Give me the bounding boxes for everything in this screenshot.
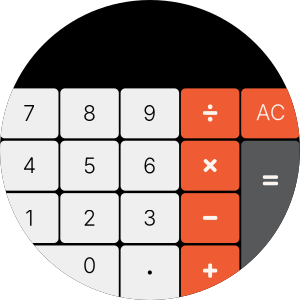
button[interactable]: Subtract [181, 193, 239, 243]
button[interactable]: Multiply [181, 141, 239, 191]
button[interactable]: 5 [60, 141, 119, 191]
staticText: 2 [83, 205, 96, 231]
staticText: 8 [83, 100, 96, 126]
button[interactable]: AC [241, 88, 300, 138]
staticText: 7 [23, 100, 35, 126]
staticText: 3 [143, 205, 156, 231]
button[interactable]: 4 [0, 141, 58, 191]
button[interactable]: Decimal point [121, 245, 179, 300]
staticText: AC [256, 100, 285, 125]
staticText: 0 [83, 253, 96, 278]
button[interactable]: 0 [0, 245, 119, 300]
button[interactable]: 7 [0, 88, 58, 138]
button[interactable]: 6 [121, 141, 179, 191]
staticText: 6 [143, 153, 156, 179]
button[interactable]: 2 [60, 193, 119, 243]
staticText: 1 [25, 205, 33, 231]
button[interactable]: 9 [121, 88, 179, 138]
button[interactable]: Add [181, 245, 239, 300]
button[interactable]: Equals [241, 141, 300, 300]
button[interactable]: 3 [121, 193, 179, 243]
staticText: 5 [83, 153, 95, 179]
staticText: 9 [143, 100, 156, 126]
button[interactable]: 8 [60, 88, 119, 138]
button[interactable]: Divide [181, 88, 239, 138]
staticText: 4 [23, 153, 36, 179]
button[interactable]: 1 [0, 193, 58, 243]
